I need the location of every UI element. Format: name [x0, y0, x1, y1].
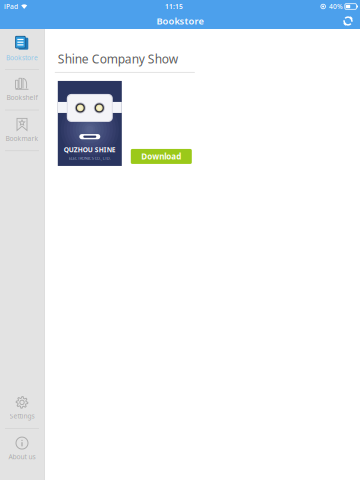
staticText: Bookstore	[156, 15, 203, 27]
button[interactable]: About us	[0, 429, 44, 469]
button[interactable]: Bookmark	[0, 110, 44, 150]
button[interactable]: Settings	[0, 388, 44, 428]
button[interactable]: Refresh	[339, 13, 357, 29]
staticText: 40%	[329, 2, 343, 11]
staticText: 11:15	[165, 2, 183, 11]
staticText: About us	[8, 452, 35, 461]
staticText: Download	[141, 151, 181, 162]
staticText: QUZHOU SHINE	[64, 145, 116, 154]
button[interactable]: Download	[131, 149, 192, 164]
staticText: Settings	[9, 412, 34, 420]
staticText: Shine Company Show	[58, 51, 178, 67]
staticText: Bookstore	[6, 53, 38, 62]
staticText: Bookmark	[5, 134, 38, 143]
button[interactable]: Bookshelf	[0, 70, 44, 110]
staticText: iPad	[4, 2, 18, 11]
staticText: Bookshelf	[6, 93, 37, 102]
button[interactable]: Bookstore	[0, 29, 44, 69]
staticText: ELECTRONICS CO., LTD.	[69, 156, 111, 161]
